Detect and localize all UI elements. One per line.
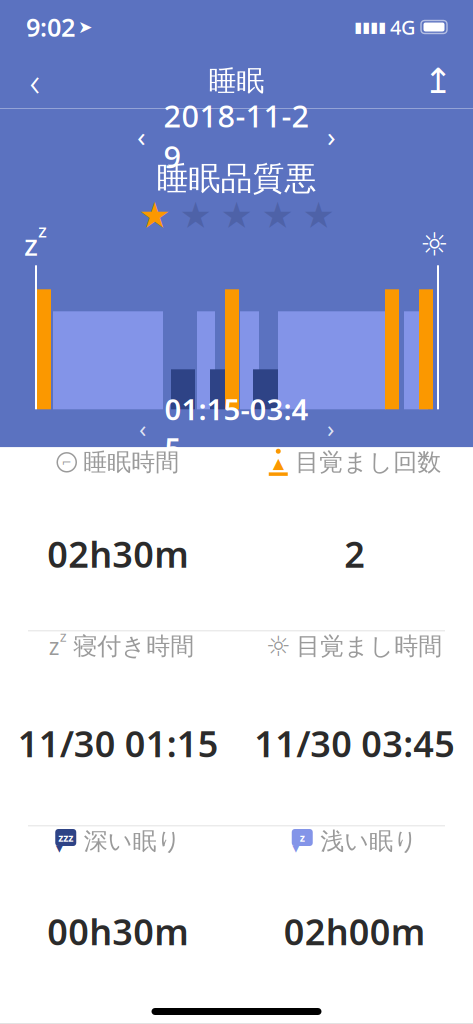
staticText: 2018-11-29	[163, 95, 309, 177]
staticText: ‹	[139, 412, 146, 444]
staticText: ‹	[137, 117, 146, 155]
staticText: 睡眠品質悪	[156, 159, 316, 198]
button[interactable]: Next period	[311, 410, 349, 446]
staticText: 浅い眠り	[320, 827, 418, 856]
button[interactable]: Previous day	[121, 116, 161, 156]
staticText: ▮▮▮▮	[354, 19, 386, 35]
staticText: 11/30 03:45	[254, 719, 455, 767]
staticText: ▼	[292, 843, 303, 854]
staticText: ★	[261, 195, 293, 236]
staticText: ↥	[423, 61, 452, 101]
staticText: 9:02	[26, 10, 75, 44]
staticText: 睡眠	[208, 64, 264, 98]
staticText: ★	[220, 195, 252, 236]
staticText: ★	[302, 195, 334, 236]
staticText: z	[38, 218, 47, 243]
button[interactable]: Previous period	[123, 410, 161, 446]
staticText: 00h30m	[47, 907, 189, 955]
staticText: ‹	[29, 54, 40, 107]
staticText: 深い眠り	[84, 827, 182, 856]
staticText: ★	[138, 195, 170, 236]
staticText: z	[24, 225, 38, 264]
staticText: z	[49, 631, 60, 661]
staticText: z	[300, 830, 305, 845]
staticText: 01:15-03:45	[164, 389, 308, 467]
staticText: ▼	[56, 843, 67, 854]
staticText: 11/30 01:15	[18, 719, 219, 767]
staticText: ›	[327, 412, 334, 444]
staticText: ›	[327, 117, 336, 155]
staticText: 目覚まし回数	[295, 448, 441, 477]
staticText: ★	[179, 195, 211, 236]
staticText: z	[60, 626, 67, 646]
staticText: ☼	[266, 630, 291, 662]
staticText: ☼	[420, 226, 449, 262]
staticText: 寝付き時間	[73, 632, 194, 661]
staticText: 2	[344, 530, 365, 578]
staticText: 02h00m	[284, 907, 426, 955]
staticText: 睡眠時間	[83, 448, 179, 477]
staticText: zzz	[58, 830, 73, 845]
button[interactable]: Next day	[311, 116, 351, 156]
staticText: 4G	[390, 14, 416, 40]
staticText: ➤	[78, 17, 93, 37]
staticText: 目覚まし時間	[296, 632, 442, 661]
staticText: ⌐	[62, 455, 72, 469]
staticText: ▲	[273, 455, 284, 471]
staticText: 02h30m	[47, 530, 189, 578]
button[interactable]: Back	[8, 57, 62, 105]
button[interactable]: Share	[411, 57, 465, 105]
